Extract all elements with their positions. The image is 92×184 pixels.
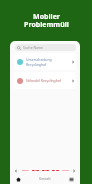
button[interactable]: Previous [13,168,19,174]
button[interactable]: Category [22,170,29,171]
button[interactable]: Category [32,170,39,171]
button[interactable]: Next [71,168,77,174]
staticText: Stilmobil Recyclinghof [26,78,71,83]
staticText: Mobiler Problemmüll [24,12,69,29]
button[interactable]: Category [42,170,49,171]
button[interactable]: Suche Name [15,44,76,51]
button[interactable]: Home [10,174,27,184]
staticText: Suche Name [23,45,44,50]
button[interactable]: Category [62,170,69,171]
staticText: Unterscheidung Recyclinghof [26,57,71,67]
button[interactable]: Menu [62,174,80,184]
button[interactable]: Category [52,170,59,171]
button[interactable]: Stilmobil Recyclinghof [14,72,76,89]
button[interactable]: Unterscheidung Recyclinghof [14,53,76,70]
button[interactable]: Umwelt [27,174,62,184]
staticText: Umwelt [39,177,51,181]
